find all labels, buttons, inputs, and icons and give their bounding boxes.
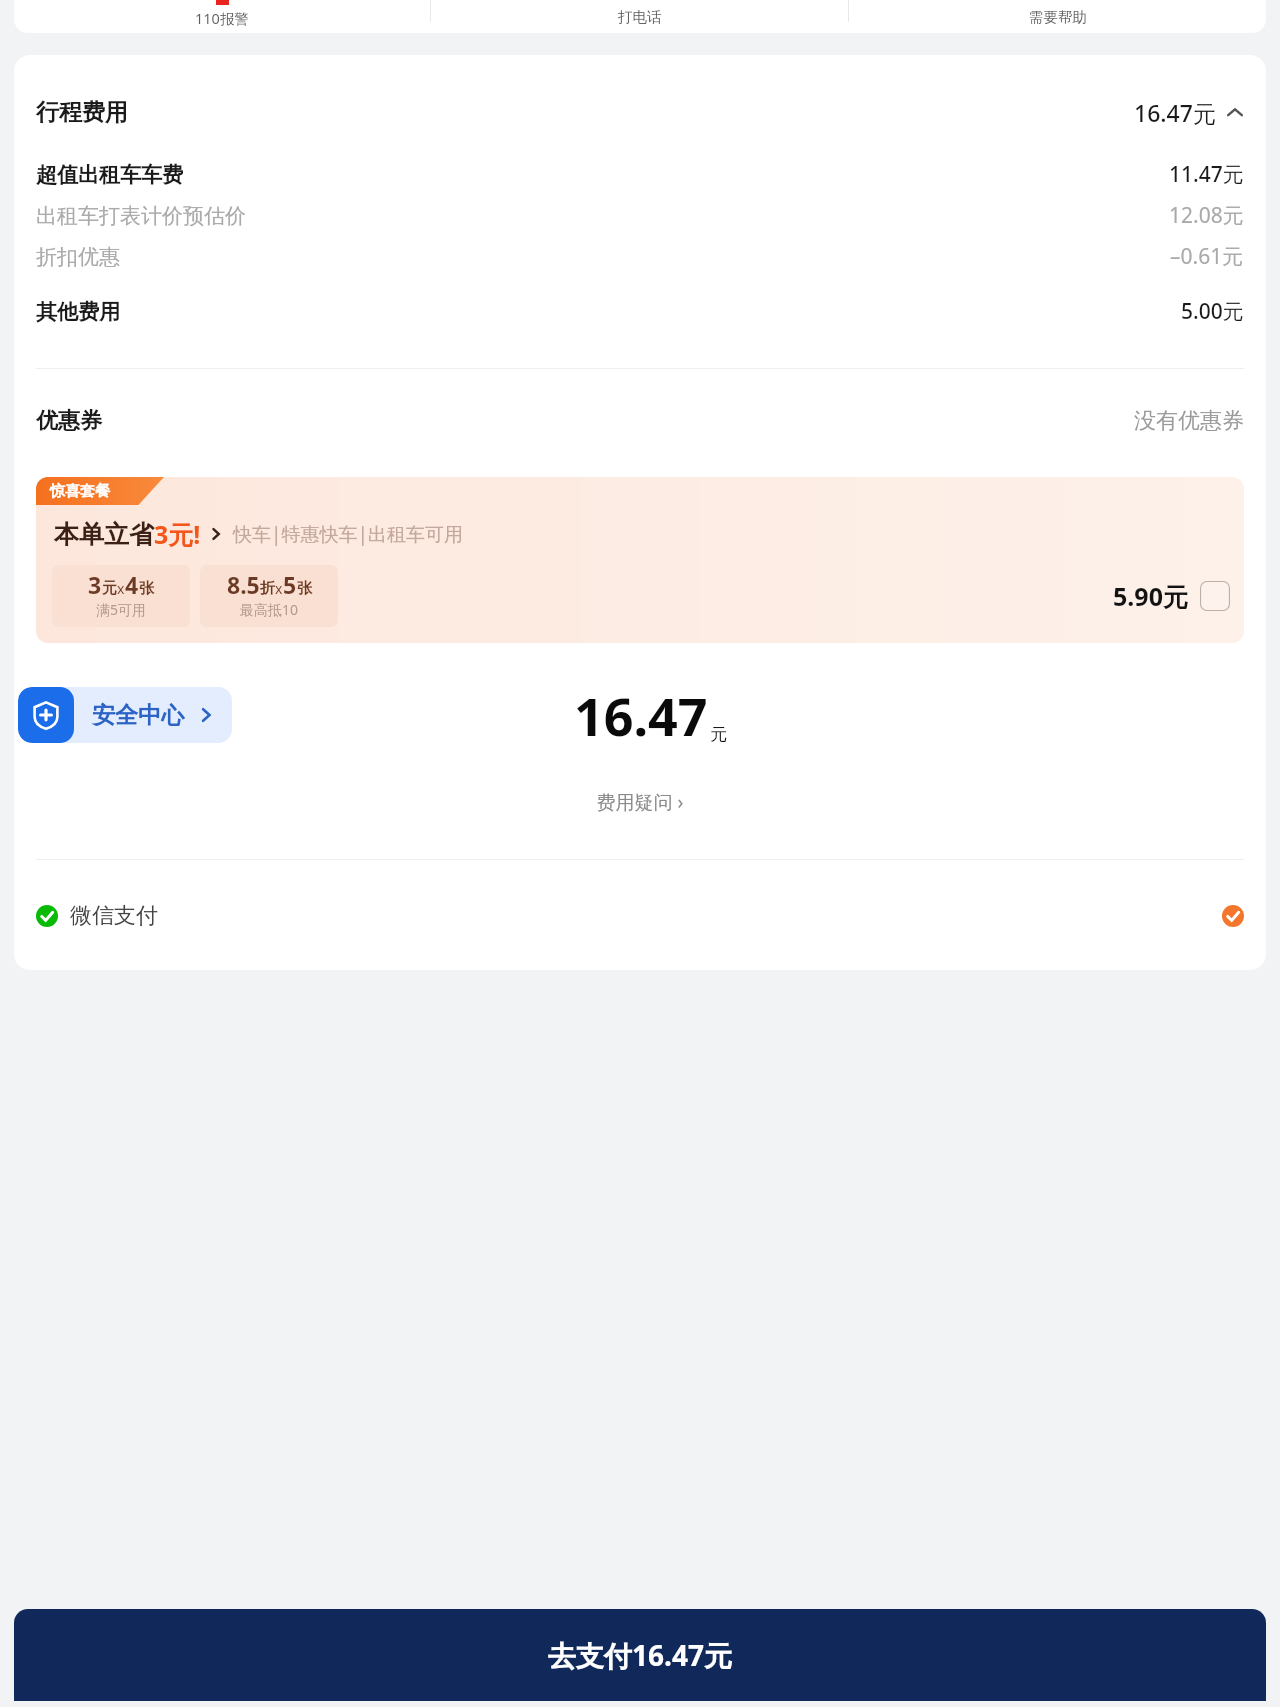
staticText: 行程费用 bbox=[36, 98, 128, 127]
staticText: 5.90元 bbox=[1113, 579, 1188, 613]
staticText: –0.61元 bbox=[1170, 242, 1244, 271]
staticText: 3 bbox=[88, 569, 102, 600]
staticText: 微信支付 bbox=[70, 902, 158, 930]
staticText: 没有优惠券 bbox=[1134, 407, 1244, 435]
button[interactable]: 惊喜套餐 bbox=[36, 477, 1244, 643]
staticText: 超值出租车车费 bbox=[36, 162, 183, 188]
staticText: 满5可用 bbox=[96, 600, 147, 619]
staticText: 需要帮助 bbox=[1029, 8, 1087, 26]
staticText: 出租车打表计价预估价 bbox=[36, 203, 246, 229]
staticText: 16.47 bbox=[574, 680, 708, 751]
button[interactable]: 行程费用 bbox=[14, 97, 1266, 128]
staticText: 张 bbox=[297, 579, 312, 598]
staticText: 打电话 bbox=[618, 8, 662, 26]
staticText: 快车|特惠快车|出租车可用 bbox=[233, 521, 463, 547]
staticText: x bbox=[275, 579, 283, 598]
staticText: 元 bbox=[102, 579, 117, 598]
staticText: 惊喜套餐 bbox=[50, 482, 110, 501]
staticText: 5 bbox=[283, 569, 297, 600]
staticText: x bbox=[117, 579, 125, 598]
staticText: 优惠券 bbox=[36, 407, 102, 435]
staticText: 最高抵10 bbox=[240, 600, 299, 619]
button[interactable]: 3 bbox=[52, 565, 190, 627]
staticText: 3元! bbox=[154, 517, 201, 551]
button[interactable]: 优惠券 bbox=[14, 407, 1266, 435]
staticText: 12.08元 bbox=[1169, 201, 1244, 230]
staticText: 元 bbox=[710, 724, 727, 745]
button[interactable]: 去支付16.47元 bbox=[14, 1609, 1266, 1701]
button[interactable]: 安全中心 bbox=[18, 687, 232, 743]
staticText: 110报警 bbox=[195, 8, 249, 28]
staticText: 5.00元 bbox=[1181, 297, 1244, 326]
staticText: 安全中心 bbox=[92, 701, 184, 730]
staticText: 8.5 bbox=[227, 569, 260, 600]
button[interactable]: 费用疑问 › bbox=[14, 789, 1266, 815]
button[interactable]: 选择优惠 bbox=[1200, 581, 1230, 611]
button[interactable]: 8.5 bbox=[200, 565, 338, 627]
button[interactable]: 需要帮助 bbox=[849, 0, 1266, 26]
staticText: 去支付16.47元 bbox=[548, 1636, 732, 1674]
staticText: 11.47元 bbox=[1169, 160, 1244, 189]
button[interactable]: 打电话 bbox=[431, 0, 848, 26]
staticText: 本单立省 bbox=[54, 519, 154, 550]
staticText: 其他费用 bbox=[36, 299, 120, 325]
staticText: 16.47元 bbox=[1134, 97, 1216, 128]
button[interactable]: 微信支付 bbox=[14, 902, 1266, 930]
button[interactable]: 110报警 bbox=[14, 0, 430, 28]
staticText: 4 bbox=[125, 569, 139, 600]
staticText: 折扣优惠 bbox=[36, 244, 120, 270]
staticText: 张 bbox=[139, 579, 154, 598]
staticText: 折 bbox=[260, 579, 275, 598]
